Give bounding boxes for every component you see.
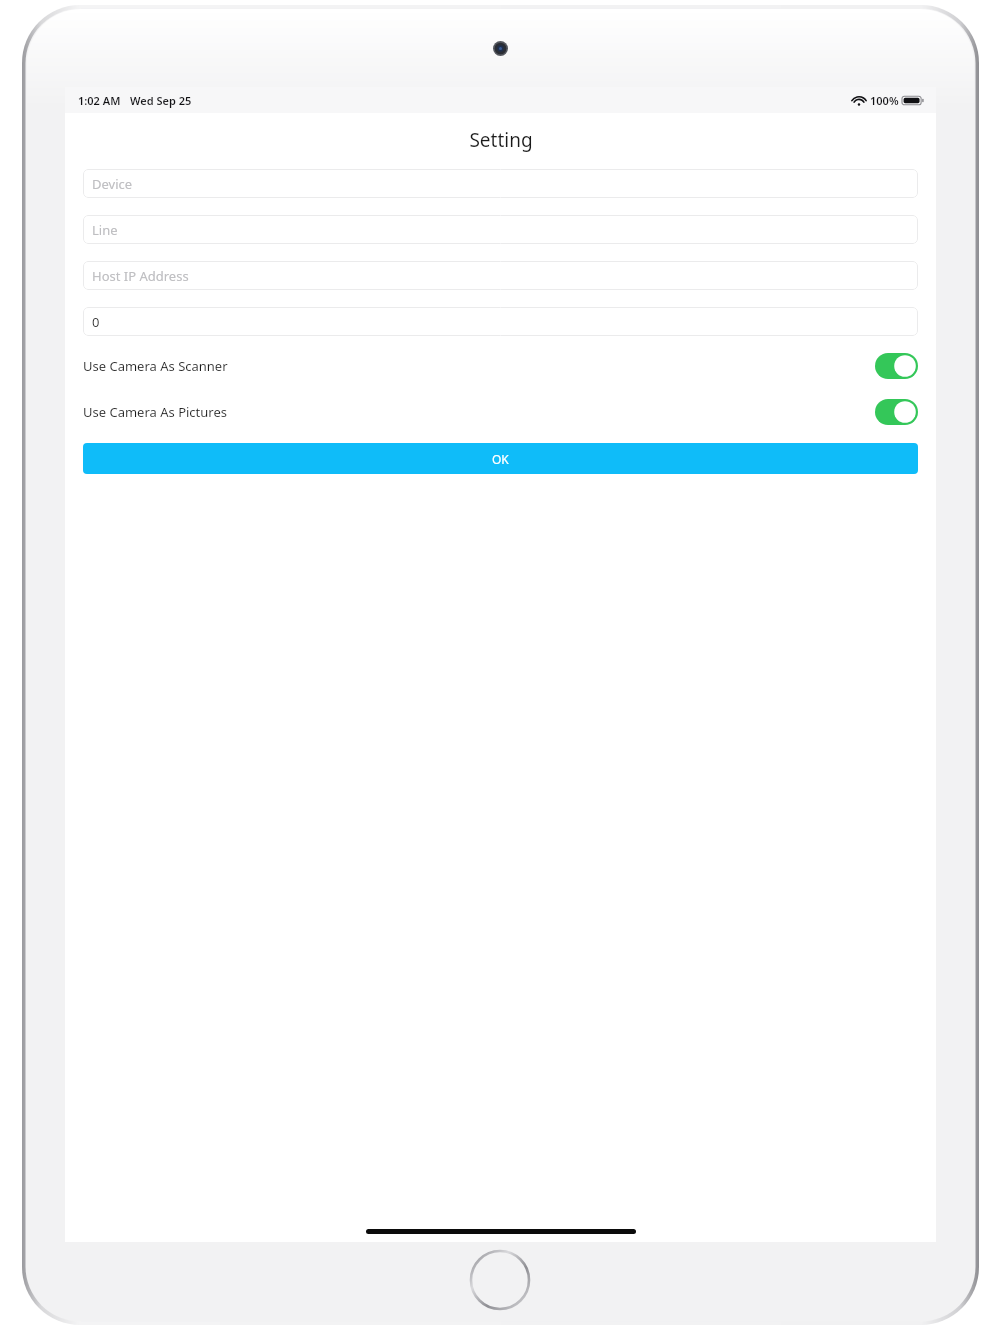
button[interactable]: Toggle on: [875, 353, 918, 379]
staticText: Wed Sep 25: [130, 93, 192, 108]
staticText: OK: [492, 451, 509, 467]
staticText: 0: [92, 313, 100, 331]
button[interactable]: OK: [83, 443, 918, 474]
staticText: Line: [92, 221, 118, 239]
button[interactable]: Use Camera As Scanner: [83, 351, 918, 381]
button[interactable]: Host IP Address: [83, 261, 918, 290]
staticText: 100%: [870, 93, 899, 108]
button[interactable]: Toggle on: [875, 399, 918, 425]
button[interactable]: Home: [467, 1247, 533, 1313]
button[interactable]: 0: [83, 307, 918, 336]
button[interactable]: Use Camera As Pictures: [83, 397, 918, 427]
staticText: Host IP Address: [92, 267, 189, 285]
staticText: Use Camera As Scanner: [83, 357, 228, 375]
button[interactable]: Line: [83, 215, 918, 244]
staticText: Use Camera As Pictures: [83, 403, 227, 421]
staticText: 1:02 AM: [78, 93, 121, 108]
button[interactable]: Device: [83, 169, 918, 198]
staticText: Setting: [469, 127, 533, 153]
staticText: Device: [92, 175, 133, 193]
